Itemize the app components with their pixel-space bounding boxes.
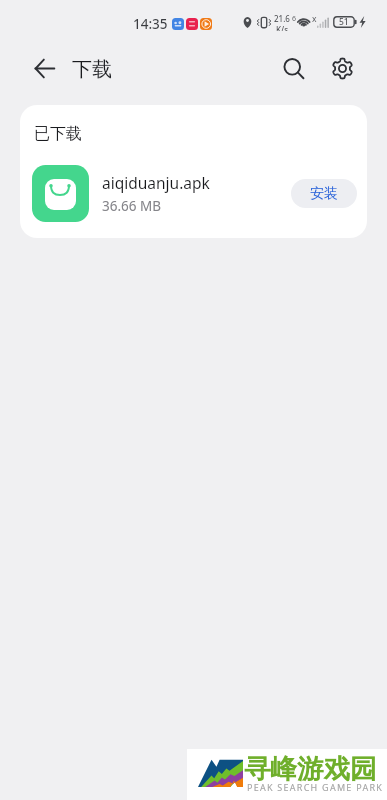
- staticText: PEAK SEARCH GAME PARK: [247, 781, 384, 793]
- staticText: aiqiduanju.apk: [102, 172, 210, 193]
- button[interactable]: Back: [26, 50, 63, 87]
- staticText: x: [312, 13, 317, 25]
- staticText: 寻峰游戏园: [244, 752, 377, 785]
- staticText: 安装: [310, 185, 338, 203]
- staticText: 6: [292, 14, 297, 24]
- button[interactable]: 安装: [291, 179, 357, 208]
- staticText: 36.66 MB: [102, 197, 162, 215]
- staticText: 14:35: [133, 15, 168, 33]
- staticText: 下载: [72, 57, 112, 82]
- staticText: K/s: [276, 24, 289, 31]
- button[interactable]: Search: [275, 50, 312, 87]
- staticText: 51: [339, 16, 349, 28]
- staticText: 已下载: [34, 124, 82, 144]
- staticText: 21.6: [274, 13, 290, 24]
- button[interactable]: aiqiduanju.apk: [20, 154, 367, 233]
- button[interactable]: Settings: [324, 50, 361, 87]
